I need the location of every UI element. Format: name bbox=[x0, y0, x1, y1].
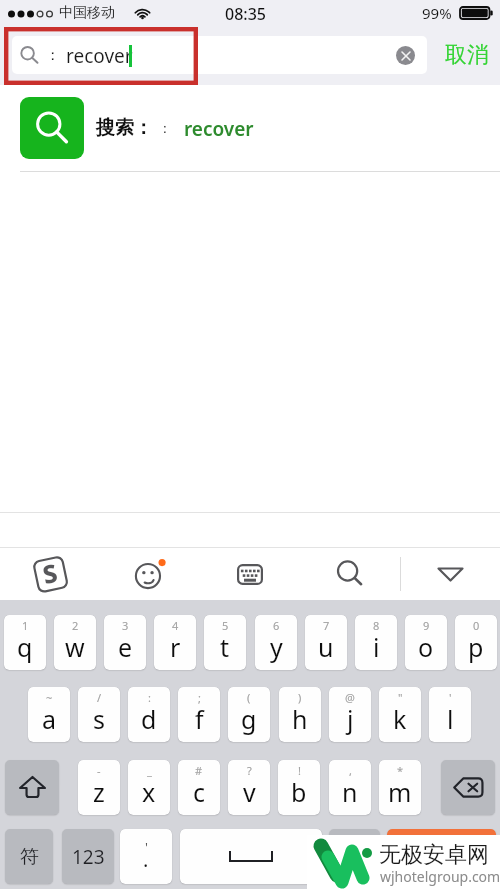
button[interactable]: - bbox=[78, 760, 120, 815]
staticText: ' bbox=[145, 838, 148, 856]
button[interactable]: 符 bbox=[5, 829, 53, 884]
button[interactable]: : bbox=[128, 687, 170, 742]
button[interactable]: 8 bbox=[355, 615, 397, 670]
button[interactable]: Clear text bbox=[396, 46, 415, 65]
button[interactable]: 9 bbox=[405, 615, 447, 670]
staticText: 2 bbox=[72, 618, 79, 633]
staticText: o bbox=[418, 630, 434, 664]
button[interactable]: / bbox=[78, 687, 120, 742]
staticText: _ bbox=[147, 763, 152, 778]
button[interactable]: 123 bbox=[62, 829, 114, 884]
staticText: 7 bbox=[323, 618, 330, 633]
staticText: wjhotelgroup.com bbox=[380, 867, 500, 886]
staticText: - bbox=[97, 763, 101, 778]
button[interactable]: Search bbox=[310, 548, 390, 600]
staticText: ; bbox=[198, 690, 201, 705]
staticText: m bbox=[388, 775, 412, 809]
button[interactable]: 5 bbox=[204, 615, 246, 670]
staticText: b bbox=[291, 775, 307, 809]
staticText: ~ bbox=[46, 690, 53, 705]
staticText: i bbox=[373, 630, 380, 664]
staticText: @ bbox=[345, 690, 355, 705]
staticText: 9 bbox=[423, 618, 430, 633]
staticText: f bbox=[195, 702, 204, 736]
button[interactable]: Hide keyboard bbox=[410, 548, 490, 600]
staticText: ) bbox=[298, 690, 302, 705]
staticText: ， bbox=[345, 845, 364, 869]
staticText: 4 bbox=[172, 618, 179, 633]
staticText: ： bbox=[158, 120, 172, 138]
button[interactable]: @ bbox=[329, 687, 371, 742]
staticText: 123 bbox=[72, 844, 105, 870]
staticText: 1 bbox=[22, 618, 29, 633]
staticText: l bbox=[447, 702, 454, 736]
staticText: . bbox=[143, 846, 149, 873]
button[interactable]: ! bbox=[278, 760, 320, 815]
staticText: r bbox=[170, 630, 181, 664]
staticText: x bbox=[142, 775, 156, 809]
button[interactable]: Sogou input bbox=[10, 548, 90, 600]
staticText: * bbox=[397, 763, 404, 778]
button[interactable]: ; bbox=[178, 687, 220, 742]
staticText: n bbox=[342, 775, 358, 809]
staticText: 8 bbox=[373, 618, 380, 633]
button[interactable]: 1 bbox=[4, 615, 46, 670]
button[interactable]: ' bbox=[120, 829, 172, 884]
button[interactable]: 取消 bbox=[437, 36, 497, 74]
staticText: h bbox=[292, 702, 308, 736]
staticText: w bbox=[65, 630, 85, 664]
button[interactable]: 7 bbox=[305, 615, 347, 670]
button[interactable]: Space bbox=[180, 829, 322, 884]
staticText: 中国移动 bbox=[59, 4, 115, 22]
staticText: u bbox=[318, 630, 334, 664]
staticText: 99% bbox=[422, 3, 452, 23]
button[interactable]: 3 bbox=[104, 615, 146, 670]
staticText: g bbox=[241, 702, 257, 736]
staticText: c bbox=[193, 775, 206, 809]
staticText: s bbox=[93, 702, 105, 736]
staticText: ： bbox=[45, 46, 60, 65]
button[interactable]: Shift bbox=[5, 760, 59, 815]
button[interactable]: ' bbox=[429, 687, 471, 742]
button[interactable]: ? bbox=[228, 760, 270, 815]
staticText: q bbox=[17, 630, 33, 664]
staticText: k bbox=[393, 702, 407, 736]
staticText: a bbox=[42, 702, 57, 736]
button[interactable]: 6 bbox=[255, 615, 297, 670]
button[interactable]: , bbox=[329, 760, 371, 815]
staticText: " bbox=[398, 690, 403, 705]
button[interactable]: ~ bbox=[28, 687, 70, 742]
staticText: : bbox=[148, 690, 151, 705]
staticText: y bbox=[270, 630, 283, 664]
staticText: recover bbox=[184, 116, 254, 142]
staticText: t bbox=[220, 630, 230, 664]
button[interactable]: ， bbox=[329, 829, 380, 884]
button[interactable]: # bbox=[178, 760, 220, 815]
staticText: 5 bbox=[222, 618, 229, 633]
staticText: 搜索： bbox=[96, 116, 153, 140]
button[interactable]: 发送 bbox=[387, 829, 496, 884]
staticText: 0 bbox=[473, 618, 480, 633]
staticText: z bbox=[93, 775, 105, 809]
button[interactable]: Keyboard bbox=[210, 548, 290, 600]
button[interactable]: Backspace bbox=[441, 760, 495, 815]
staticText: j bbox=[347, 702, 354, 736]
staticText: , bbox=[349, 763, 352, 778]
button[interactable]: _ bbox=[128, 760, 170, 815]
button[interactable]: ) bbox=[279, 687, 321, 742]
button[interactable]: ： bbox=[12, 36, 427, 74]
staticText: 3 bbox=[122, 618, 129, 633]
button[interactable]: 4 bbox=[154, 615, 196, 670]
staticText: 08:35 bbox=[225, 3, 266, 25]
staticText: v bbox=[243, 775, 256, 809]
staticText: / bbox=[97, 690, 102, 705]
button[interactable]: ( bbox=[228, 687, 270, 742]
button[interactable]: Emoji bbox=[110, 548, 190, 600]
staticText: recover bbox=[66, 43, 133, 69]
button[interactable]: 0 bbox=[455, 615, 497, 670]
button[interactable]: " bbox=[379, 687, 421, 742]
button[interactable]: 2 bbox=[54, 615, 96, 670]
button[interactable]: * bbox=[379, 760, 421, 815]
staticText: 符 bbox=[20, 845, 39, 869]
button[interactable]: 搜索： bbox=[0, 85, 500, 171]
